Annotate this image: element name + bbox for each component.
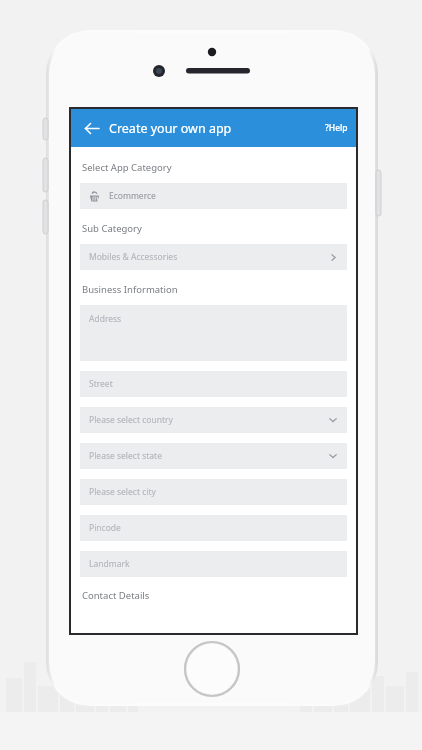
staticText: Sub Category	[82, 222, 142, 235]
button[interactable]: Address	[80, 305, 347, 361]
staticText: Create your own app	[109, 120, 232, 137]
staticText: Please select country	[89, 414, 173, 426]
staticText: Contact Details	[82, 589, 150, 602]
staticText: Address	[89, 313, 122, 325]
button[interactable]: Back	[77, 114, 105, 142]
button[interactable]: Mobiles & Accessories	[80, 244, 347, 270]
button[interactable]: Street	[80, 371, 347, 397]
staticText: Please select state	[89, 450, 162, 462]
staticText: Pincode	[89, 522, 121, 534]
staticText: Select App Category	[82, 161, 172, 174]
staticText: Landmark	[89, 558, 130, 570]
button[interactable]: Landmark	[80, 551, 347, 577]
staticText: Ecommerce	[109, 190, 156, 202]
staticText: Street	[89, 378, 113, 390]
staticText: Business Information	[82, 283, 178, 296]
button[interactable]: Pincode	[80, 515, 347, 541]
button[interactable]: Please select city	[80, 479, 347, 505]
staticText: ?Help	[325, 122, 348, 134]
button[interactable]: Please select state	[80, 443, 347, 469]
button[interactable]: ?Help	[317, 116, 356, 140]
staticText: Please select city	[89, 486, 156, 498]
button[interactable]: Ecommerce	[80, 183, 347, 209]
button[interactable]: Please select country	[80, 407, 347, 433]
staticText: Mobiles & Accessories	[89, 251, 178, 263]
